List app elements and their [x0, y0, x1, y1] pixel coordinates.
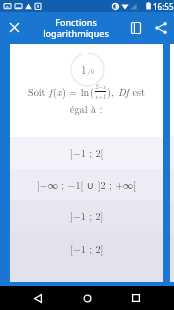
button[interactable]: Home [67, 286, 107, 310]
staticText: Df [118, 85, 129, 99]
staticText: est [129, 85, 145, 99]
staticText: ]−1 ; 2] [70, 209, 104, 223]
staticText: x [57, 85, 62, 99]
button[interactable]: [−1 ; 2] [10, 231, 163, 282]
staticText: ( [90, 85, 94, 99]
staticText: f [49, 85, 53, 99]
button[interactable]: ]−1 ; 2[ [10, 137, 163, 169]
button[interactable]: ]−∞ ; −1[ ∪ ]2 ; +∞[ [10, 169, 163, 200]
staticText: égal à : [70, 102, 103, 116]
staticText: [−1 ; 2] [70, 242, 104, 256]
staticText: 16:55 [153, 1, 174, 12]
staticText: ]−∞ ; −1[ ∪ ]2 ; +∞[ [37, 178, 137, 192]
staticText: ]−1 ; 2[ [70, 146, 104, 160]
staticText: , [111, 85, 118, 99]
staticText: x+1 [95, 92, 106, 101]
button[interactable]: Recents [116, 286, 156, 310]
staticText: 2−x [95, 82, 106, 91]
button[interactable]: ]−1 ; 2] [10, 200, 163, 231]
button[interactable]: Notes [124, 12, 148, 43]
button[interactable]: Close [0, 12, 28, 43]
button[interactable]: Share [148, 12, 174, 43]
staticText: ) = ln [62, 85, 90, 99]
staticText: Fonctions logarithmiques [28, 16, 124, 39]
staticText: ( [53, 85, 57, 99]
staticText: 1 [81, 62, 87, 78]
staticText: /6 [87, 66, 95, 77]
staticText: ) [107, 85, 111, 99]
staticText: Soit [28, 85, 49, 99]
button[interactable]: Back [18, 286, 58, 310]
